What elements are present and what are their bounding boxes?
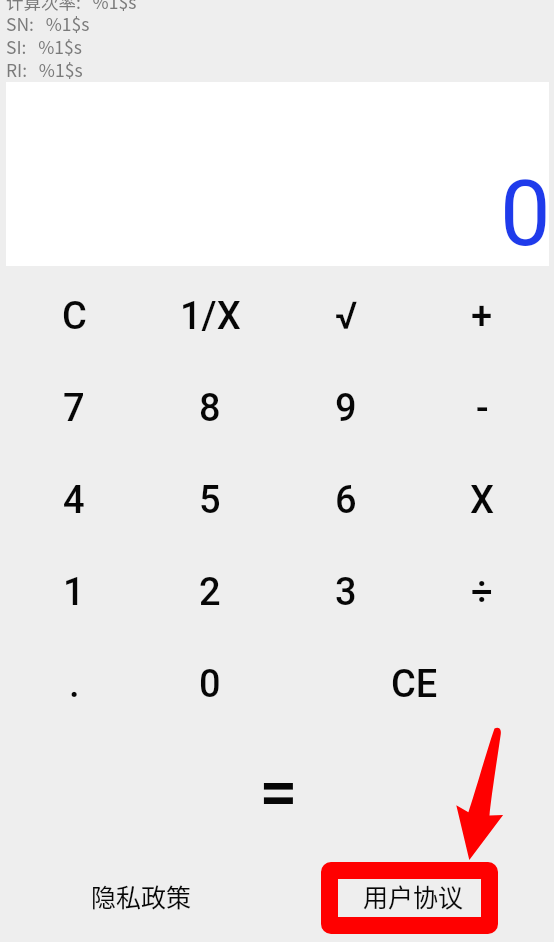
staticText: ÷ [471,570,493,615]
staticText: RI: %1$s [6,57,83,82]
button[interactable]: Equals [6,730,550,854]
staticText: 8 [199,386,221,431]
staticText: 2 [199,570,221,615]
staticText: 7 [63,386,85,431]
staticText: = [259,752,298,833]
staticText: 计算次率: %1$s [6,0,137,14]
button[interactable]: Plus [414,270,550,362]
button[interactable]: Five [142,454,278,546]
staticText: 4 [63,478,85,523]
button[interactable]: Six [278,454,414,546]
staticText: √ [335,294,358,339]
staticText: . [69,662,80,707]
staticText: CE [391,662,438,707]
staticText: 1/X [180,294,241,339]
staticText: 5 [199,478,221,523]
staticText: 9 [335,386,357,431]
button[interactable]: Nine [278,362,414,454]
button[interactable]: Minus [414,362,550,454]
button[interactable]: Square root [278,270,414,362]
button[interactable]: Reciprocal [142,270,278,362]
staticText: 0 [500,162,551,267]
staticText: SN: %1$s [6,11,90,36]
staticText: 6 [335,478,357,523]
button[interactable]: Divide [414,546,550,638]
button[interactable]: Three [278,546,414,638]
button[interactable]: Seven [6,362,142,454]
button[interactable]: Clear [6,270,142,362]
staticText: + [471,294,493,339]
button[interactable]: Two [142,546,278,638]
button[interactable]: 隐私政策 [5,853,277,939]
staticText: SI: %1$s [6,34,82,59]
staticText: 隐私政策 [91,878,192,914]
staticText: 1 [63,570,85,615]
button[interactable]: Four [6,454,142,546]
button[interactable]: 用户协议 [277,853,549,939]
button[interactable]: Clear entry [278,638,550,730]
button[interactable]: Decimal point [6,638,142,730]
button[interactable]: One [6,546,142,638]
staticText: 0 [199,662,221,707]
staticText: - [476,386,489,431]
button[interactable]: Zero [142,638,278,730]
button[interactable]: Eight [142,362,278,454]
staticText: 用户协议 [363,878,464,914]
button[interactable]: Multiply [414,454,550,546]
staticText: X [470,478,495,523]
staticText: 3 [335,570,357,615]
staticText: C [62,294,87,339]
